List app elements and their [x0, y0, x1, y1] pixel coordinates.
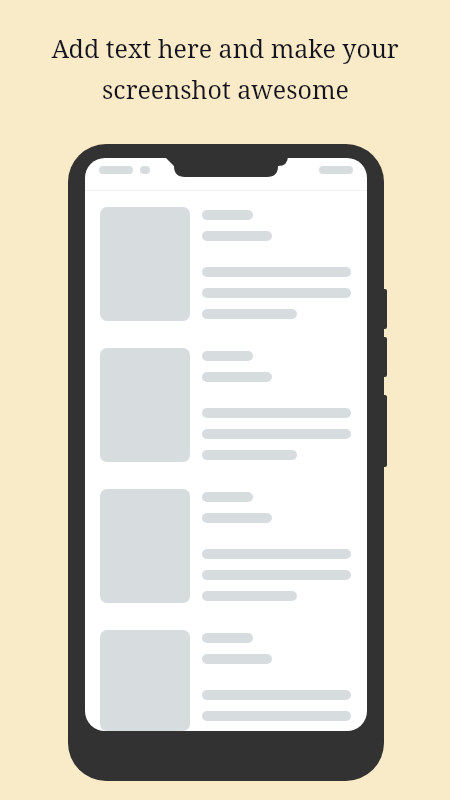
- button[interactable]: [85, 473, 367, 614]
- button[interactable]: [85, 191, 367, 332]
- staticText: Add text here and make your: [51, 31, 399, 65]
- button[interactable]: Volume up: [379, 289, 387, 329]
- button[interactable]: [85, 332, 367, 473]
- button[interactable]: [85, 614, 367, 731]
- button[interactable]: Volume down: [379, 337, 387, 377]
- button[interactable]: Power: [379, 395, 387, 467]
- staticText: screenshot awesome: [102, 72, 349, 106]
